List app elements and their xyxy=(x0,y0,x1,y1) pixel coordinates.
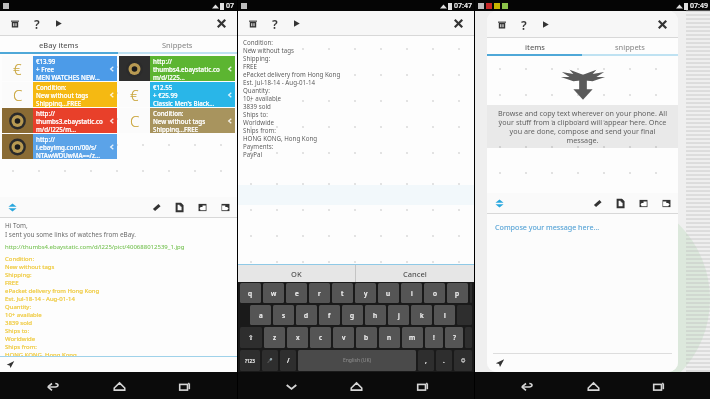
button[interactable]: Delete xyxy=(245,16,260,31)
button[interactable]: Import xyxy=(636,196,650,210)
button[interactable]: i xyxy=(401,283,422,303)
staticText: Condition: xyxy=(5,255,35,263)
staticText: PayPal xyxy=(243,150,263,158)
button[interactable]: q xyxy=(240,283,261,303)
button[interactable]: items xyxy=(487,38,582,54)
staticText: Payments: xyxy=(243,142,274,150)
button[interactable]: C xyxy=(119,108,235,133)
button[interactable]: snippets xyxy=(582,38,678,54)
button[interactable]: Recents xyxy=(645,373,671,399)
button[interactable]: Play xyxy=(289,16,304,31)
button[interactable]: k xyxy=(411,305,432,325)
button[interactable]: Back xyxy=(40,373,66,399)
button[interactable]: ⇧ xyxy=(240,327,262,348)
button[interactable]: € xyxy=(119,82,235,107)
button[interactable]: Recents xyxy=(171,373,197,399)
button[interactable]: . xyxy=(436,350,452,371)
button[interactable]: Cancel xyxy=(356,265,474,282)
button[interactable]: Home xyxy=(106,373,132,399)
button[interactable]: b xyxy=(356,327,377,348)
button[interactable]: z xyxy=(264,327,285,348)
button[interactable]: Back xyxy=(514,373,540,399)
button[interactable]: Play xyxy=(51,16,66,31)
staticText: ? xyxy=(34,16,40,31)
button[interactable]: Snippets xyxy=(118,36,237,52)
button[interactable]: Delete xyxy=(7,16,22,31)
button[interactable]: eBay items xyxy=(0,36,118,52)
staticText: j xyxy=(398,311,400,320)
button[interactable]: t xyxy=(332,283,353,303)
button[interactable]: Erase xyxy=(149,200,163,214)
button[interactable]: € xyxy=(2,56,117,81)
button[interactable]: 🎤 xyxy=(262,350,278,371)
button[interactable]: x xyxy=(287,327,308,348)
button[interactable]: f xyxy=(319,305,340,325)
button[interactable]: Help xyxy=(516,17,531,32)
button[interactable]: Share xyxy=(218,200,232,214)
button[interactable]: j xyxy=(388,305,409,325)
button[interactable]: ! xyxy=(425,327,443,348)
button[interactable]: s xyxy=(273,305,294,325)
button[interactable]: Send xyxy=(493,356,507,370)
button[interactable]: Erase xyxy=(590,196,604,210)
button[interactable]: OK xyxy=(238,265,355,282)
staticText: d xyxy=(304,311,309,320)
button[interactable]: Play xyxy=(538,17,553,32)
button[interactable]: ?123 xyxy=(240,350,260,371)
button[interactable]: Reorder xyxy=(492,196,506,210)
button[interactable]: Share xyxy=(659,196,673,210)
button[interactable]: e xyxy=(286,283,307,303)
button[interactable]: http:// xyxy=(119,56,235,81)
button[interactable]: l xyxy=(434,305,455,325)
button[interactable]: Import xyxy=(195,200,209,214)
button[interactable]: http:// xyxy=(2,134,117,159)
button[interactable]: n xyxy=(379,327,400,348)
button[interactable]: r xyxy=(309,283,330,303)
button[interactable]: a xyxy=(250,305,271,325)
button[interactable]: v xyxy=(333,327,354,348)
button[interactable]: m xyxy=(402,327,423,348)
button[interactable]: Close xyxy=(654,16,670,32)
button[interactable]: Help xyxy=(29,16,44,31)
staticText: Browse and copy text wherever on your ph… xyxy=(493,108,672,145)
staticText: NTAwWDUwMA==/z… xyxy=(36,151,100,159)
button[interactable]: u xyxy=(378,283,399,303)
button[interactable]: Hide keyboard xyxy=(278,373,304,399)
button[interactable]: http:// xyxy=(2,108,117,133)
button[interactable]: Send xyxy=(4,358,17,371)
button[interactable]: ? xyxy=(445,327,463,348)
button[interactable]: w xyxy=(263,283,284,303)
button[interactable]: Document xyxy=(172,200,186,214)
staticText: Classic Men's Black… xyxy=(153,99,215,107)
button[interactable]: Home xyxy=(343,373,369,399)
button[interactable]: Document xyxy=(613,196,627,210)
staticText: n xyxy=(387,333,392,342)
button[interactable]: Reorder xyxy=(5,200,19,214)
button[interactable]: , xyxy=(418,350,434,371)
button[interactable]: ☺ xyxy=(454,350,472,371)
button[interactable]: o xyxy=(424,283,445,303)
button[interactable]: c xyxy=(310,327,331,348)
button[interactable]: English (UK) xyxy=(298,350,416,371)
button[interactable]: d xyxy=(296,305,317,325)
staticText: Shipping…FREE xyxy=(153,125,199,133)
button[interactable]: p xyxy=(447,283,468,303)
staticText: k xyxy=(420,311,424,320)
button[interactable]: C xyxy=(2,82,117,107)
button[interactable]: h xyxy=(365,305,386,325)
staticText: ? xyxy=(453,333,456,342)
button[interactable]: Recents xyxy=(409,373,435,399)
button[interactable]: Close xyxy=(450,15,466,31)
button[interactable]: y xyxy=(355,283,376,303)
button[interactable]: g xyxy=(342,305,363,325)
button[interactable]: Delete xyxy=(494,17,509,32)
button[interactable]: Home xyxy=(580,373,606,399)
staticText: 🎤 xyxy=(267,358,273,363)
staticText: Cancel xyxy=(403,269,427,279)
button[interactable]: Help xyxy=(267,16,282,31)
button[interactable]: Close xyxy=(213,15,229,31)
button[interactable]: / xyxy=(280,350,296,371)
